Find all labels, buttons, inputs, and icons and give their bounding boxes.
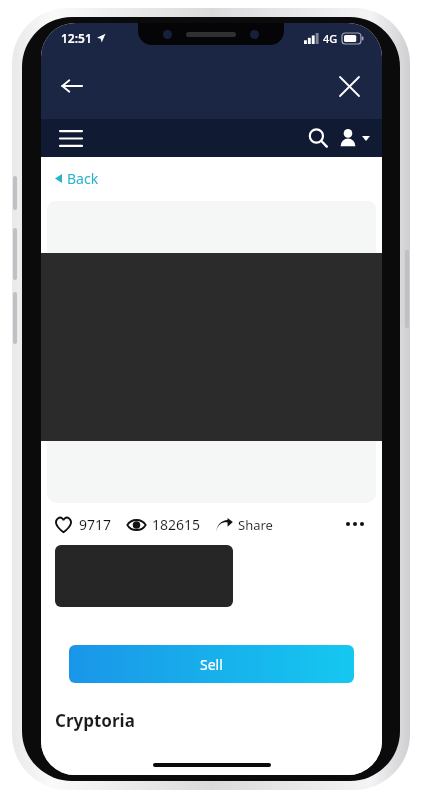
button[interactable]: Search [298,119,338,157]
staticText: Back [67,169,99,188]
staticText: Sell [200,655,223,674]
staticText: 12:51 [61,30,92,46]
staticText: 182615 [152,515,201,534]
button[interactable]: Account [338,119,372,157]
button[interactable]: Menu [49,119,93,157]
button[interactable]: Sell [69,645,354,683]
button[interactable]: Back [55,169,99,188]
button[interactable]: 9717 [54,515,112,534]
button[interactable]: Back [49,63,95,109]
staticText: 9717 [79,515,112,534]
staticText: 4G [323,31,338,46]
staticText: Share [238,516,273,534]
staticText: Cryptoria [55,709,135,732]
button[interactable]: Close [326,63,372,109]
button[interactable]: Share [216,516,273,534]
button[interactable]: More options [338,511,372,537]
staticText: C [55,549,64,568]
